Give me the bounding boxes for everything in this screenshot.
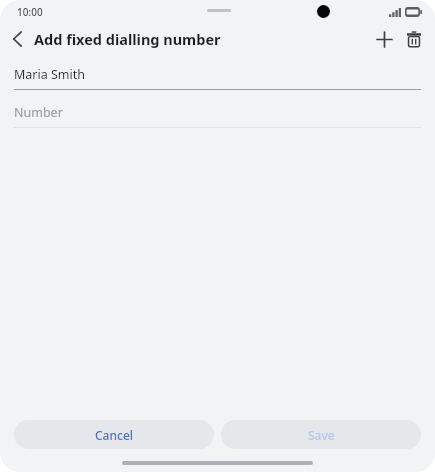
button[interactable]: Delete: [399, 24, 429, 54]
button[interactable]: Add: [369, 24, 399, 54]
staticText: Add fixed dialling number: [34, 29, 221, 49]
button[interactable]: Back: [0, 24, 34, 54]
button[interactable]: Number: [0, 101, 435, 128]
staticText: Cancel: [95, 427, 134, 443]
button[interactable]: Save: [221, 420, 421, 449]
staticText: Number: [14, 104, 63, 121]
staticText: Save: [308, 427, 335, 443]
button[interactable]: Cancel: [14, 420, 214, 449]
staticText: Maria Smith: [14, 66, 86, 83]
button[interactable]: Maria Smith: [0, 63, 435, 90]
staticText: 10:00: [17, 5, 43, 19]
